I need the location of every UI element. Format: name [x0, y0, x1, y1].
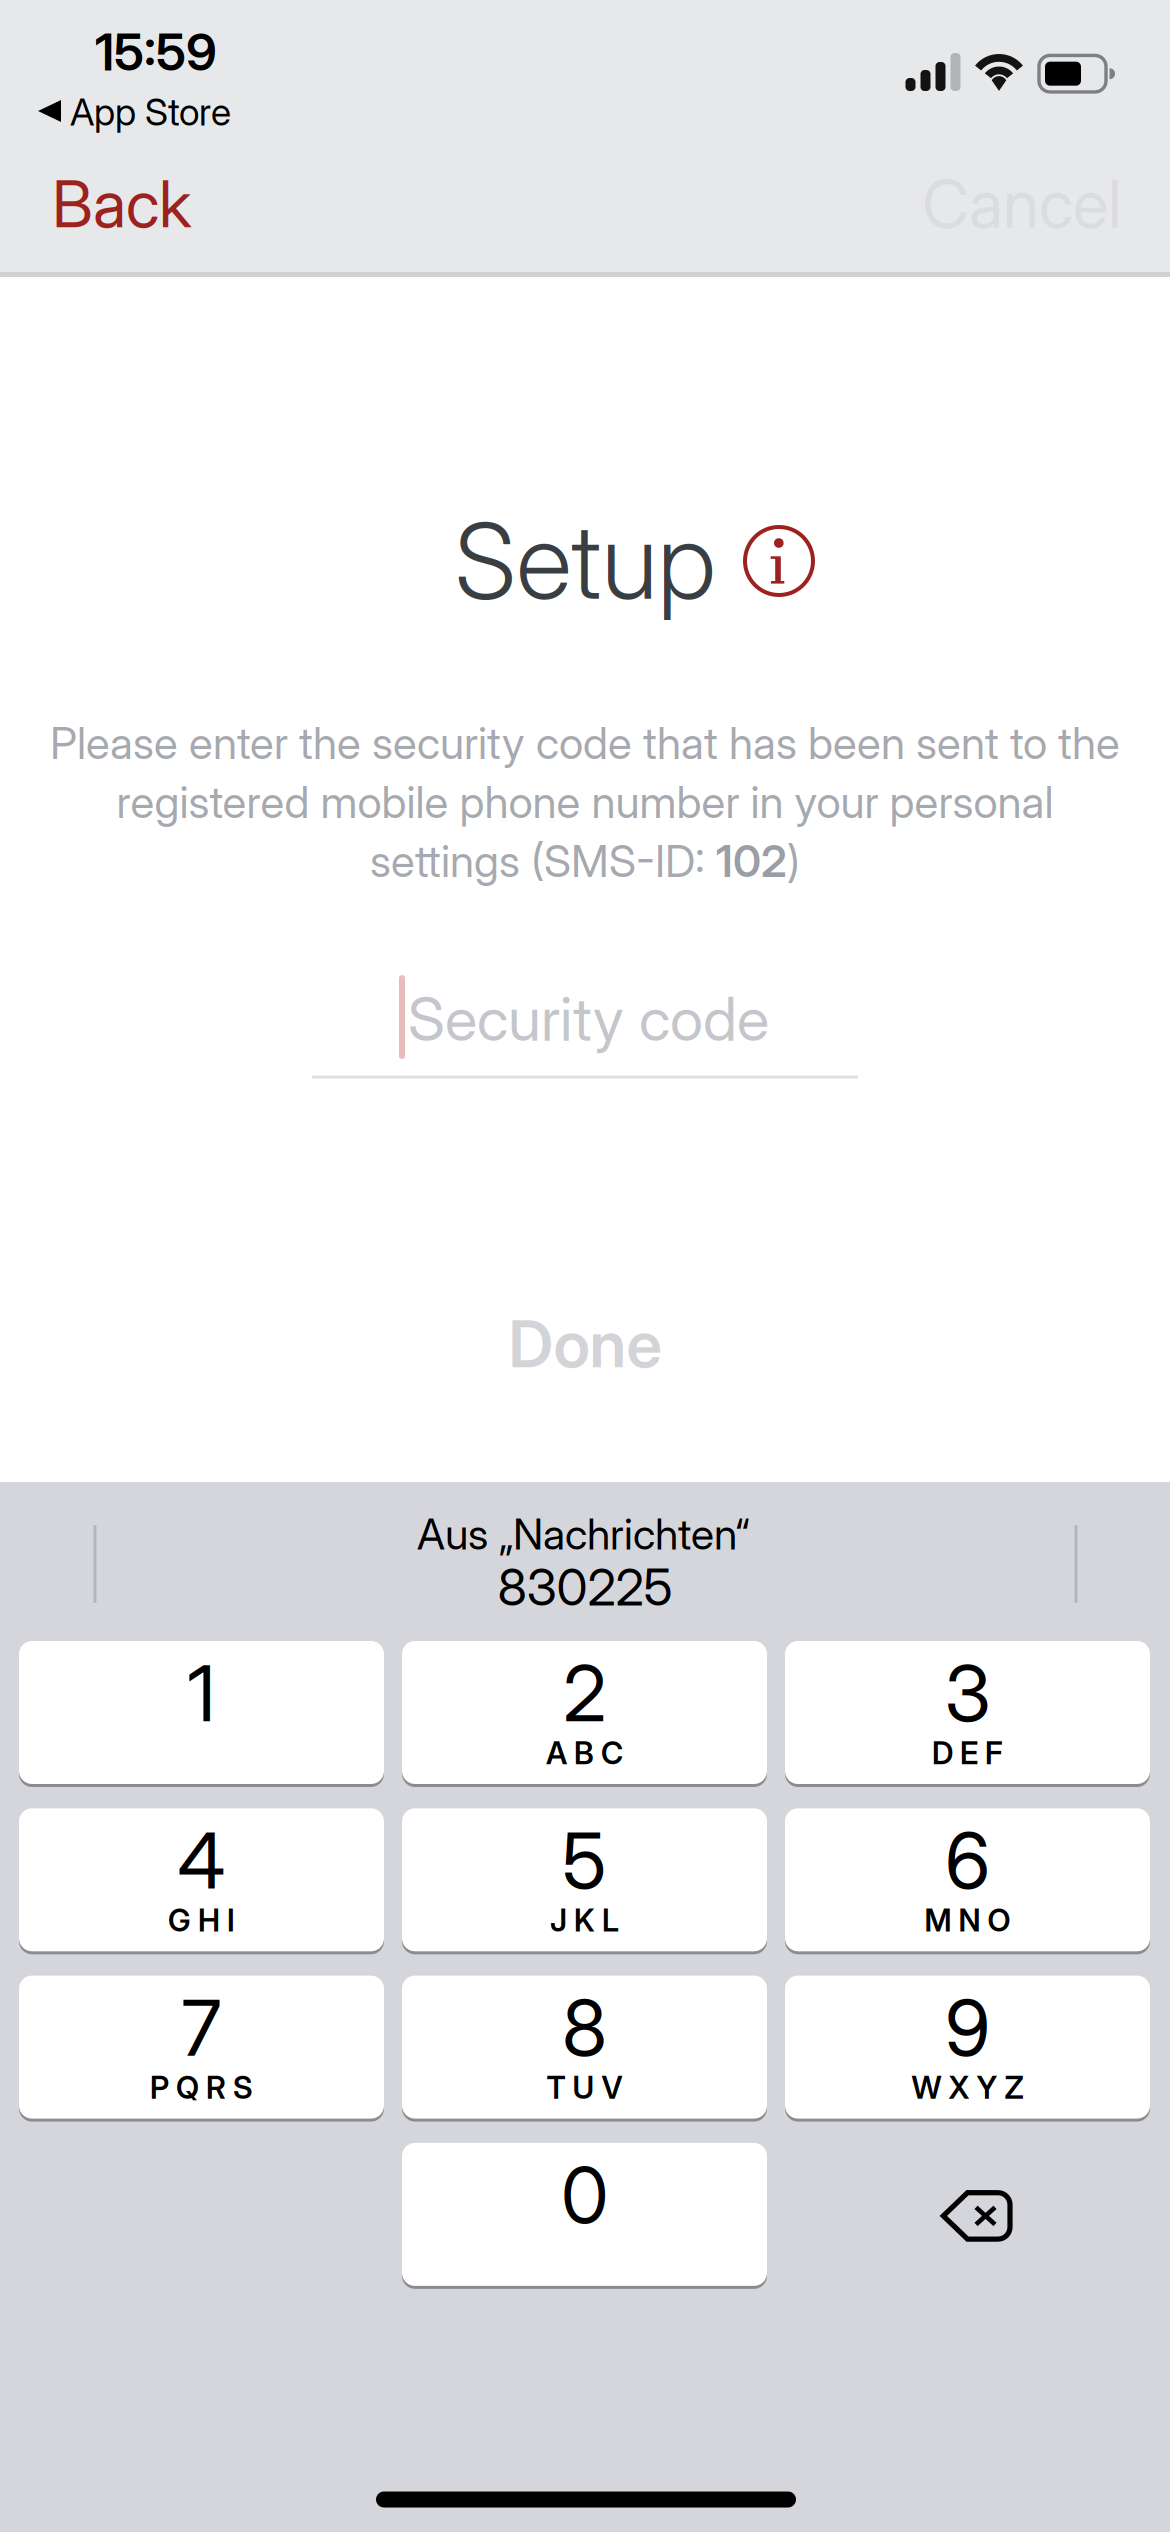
button[interactable]: 6	[785, 1808, 1150, 1954]
button[interactable]: Back	[52, 147, 252, 261]
button[interactable]: 2	[402, 1641, 767, 1787]
staticText: 8	[562, 1981, 607, 2074]
staticText: Done	[508, 1305, 661, 1383]
button[interactable]: 1	[19, 1641, 384, 1787]
button[interactable]: App Store	[38, 87, 318, 137]
staticText: W X Y Z	[911, 2069, 1023, 2106]
staticText: J K L	[550, 1902, 619, 1939]
button[interactable]: Cancel	[891, 147, 1121, 261]
button[interactable]: Information	[735, 517, 823, 605]
button[interactable]: Security code	[312, 960, 858, 1100]
staticText: 102	[716, 834, 787, 888]
button[interactable]: 5	[402, 1808, 767, 1954]
staticText: 15:59	[95, 21, 217, 83]
staticText: M N O	[924, 1902, 1010, 1939]
staticText: T U V	[546, 2069, 622, 2106]
staticText: )	[787, 834, 800, 888]
button[interactable]: Done	[425, 1289, 745, 1399]
staticText: App Store	[70, 89, 231, 135]
button[interactable]: 7	[19, 1976, 384, 2122]
staticText: 6	[945, 1813, 990, 1907]
staticText: Aus „Nachrichten“	[417, 1508, 749, 1560]
staticText: A B C	[546, 1734, 623, 1771]
staticText: Back	[52, 165, 191, 243]
staticText: settings (SMS-ID:	[370, 834, 716, 888]
staticText: Cancel	[922, 164, 1121, 243]
staticText: D E F	[932, 1734, 1003, 1771]
staticText: 3	[944, 1646, 990, 1740]
button[interactable]: 8	[402, 1976, 767, 2122]
staticText: 5	[562, 1813, 607, 1907]
staticText: 830225	[497, 1556, 672, 1618]
staticText: 4	[177, 1813, 225, 1907]
button[interactable]: Aus „Nachrichten“	[233, 1482, 933, 1612]
staticText: 9	[945, 1981, 990, 2074]
staticText: 0	[561, 2148, 608, 2242]
staticText: 7	[181, 1981, 221, 2074]
button[interactable]: 9	[785, 1976, 1150, 2122]
button[interactable]: Delete	[794, 2144, 1159, 2287]
staticText: 2	[563, 1646, 606, 1740]
staticText: G H I	[168, 1902, 235, 1939]
button[interactable]: 3	[785, 1641, 1150, 1787]
staticText: P Q R S	[150, 2069, 253, 2106]
staticText: 1	[187, 1646, 215, 1740]
staticText: Security code	[408, 983, 769, 1055]
staticText: registered mobile phone number in your p…	[116, 775, 1053, 829]
button[interactable]: 0	[402, 2143, 767, 2289]
staticText: Setup	[454, 498, 715, 624]
staticText: Please enter the security code that has …	[50, 716, 1120, 770]
button[interactable]: 4	[19, 1808, 384, 1954]
